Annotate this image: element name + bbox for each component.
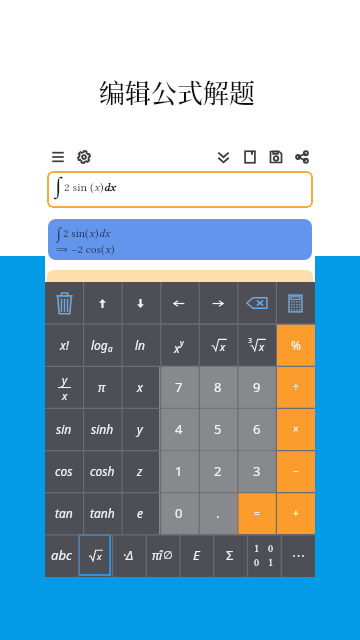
button[interactable]: Backspace [237, 282, 276, 324]
staticText: ln [135, 337, 146, 353]
button[interactable]: Menu [45, 144, 71, 170]
button[interactable]: x [237, 324, 276, 366]
button[interactable]: 3 [237, 450, 276, 492]
button[interactable]: ln [121, 324, 159, 366]
button[interactable]: x [78, 534, 111, 576]
staticText: y [62, 372, 68, 387]
button[interactable]: x [159, 324, 198, 366]
staticText: z [137, 463, 143, 479]
staticText: a [108, 343, 113, 354]
button[interactable]: E [179, 534, 213, 576]
staticText: ∅ [163, 549, 173, 562]
staticText: 1 [175, 462, 183, 480]
button[interactable]: Move right [198, 282, 237, 324]
button[interactable]: log [83, 324, 121, 366]
button[interactable]: x! [45, 324, 83, 366]
staticText: x [94, 180, 100, 194]
button[interactable]: x [198, 324, 237, 366]
button[interactable]: Move down [121, 282, 159, 324]
staticText: e [137, 505, 143, 521]
button[interactable]: 7 [159, 366, 198, 408]
button[interactable]: tanh [83, 492, 121, 534]
button[interactable]: ·Δ [111, 534, 145, 576]
button[interactable]: ÷ [276, 366, 315, 408]
staticText: 1 [268, 556, 274, 569]
staticText: tanh [90, 505, 115, 521]
button[interactable]: 0 [159, 492, 198, 534]
button[interactable]: x [121, 366, 159, 408]
staticText: E [193, 546, 200, 564]
staticText: π [98, 379, 106, 395]
button[interactable]: y [121, 408, 159, 450]
staticText: ⋯ [292, 548, 305, 563]
staticText: . [216, 504, 220, 522]
button[interactable]: z [121, 450, 159, 492]
staticText: x [259, 340, 265, 354]
staticText: dx [99, 227, 111, 240]
button[interactable]: e [121, 492, 159, 534]
button[interactable]: cos [45, 450, 83, 492]
button[interactable]: 1 [247, 534, 281, 576]
staticText: 3 [248, 336, 253, 346]
button[interactable]: πî [145, 534, 179, 576]
button[interactable]: ∫ [47, 171, 313, 208]
button[interactable]: Share [289, 144, 315, 170]
button[interactable]: tan [45, 492, 83, 534]
staticText: ∫ [54, 172, 64, 201]
button[interactable]: Σ [213, 534, 247, 576]
staticText: Σ [226, 546, 234, 564]
button[interactable]: % [276, 324, 315, 366]
button[interactable]: Collapse [210, 144, 236, 170]
button[interactable]: ∫ [48, 219, 312, 260]
button[interactable]: Move left [159, 282, 198, 324]
button[interactable]: 8 [198, 366, 237, 408]
button[interactable]: New document [237, 144, 263, 170]
staticText: x [174, 340, 180, 356]
button[interactable]: 1 [159, 450, 198, 492]
staticText: ⇒ −2 cos( [56, 243, 105, 256]
button[interactable]: × [276, 408, 315, 450]
staticText: = [254, 506, 260, 520]
button[interactable]: Delete [45, 282, 83, 324]
staticText: 0 [175, 504, 183, 522]
button[interactable]: 2 [198, 450, 237, 492]
staticText: ÷ [293, 380, 299, 394]
staticText: abc [51, 546, 72, 564]
staticText: 3 [253, 462, 261, 480]
staticText: 2 [214, 462, 222, 480]
button[interactable]: 4 [159, 408, 198, 450]
button[interactable]: ⋯ [281, 534, 315, 576]
staticText: ∫ [56, 224, 63, 243]
button[interactable]: abc [45, 534, 78, 576]
button[interactable]: Save [263, 144, 289, 170]
staticText: 0 [254, 556, 260, 569]
staticText: × [293, 422, 299, 436]
button[interactable]: − [276, 450, 315, 492]
staticText: x [97, 550, 102, 563]
staticText: 9 [253, 378, 261, 396]
staticText: − [293, 464, 299, 478]
button[interactable]: 5 [198, 408, 237, 450]
staticText: 编辑公式解题 [99, 73, 256, 110]
staticText: log [91, 337, 108, 353]
button[interactable]: Settings [71, 144, 97, 170]
button[interactable]: sin [45, 408, 83, 450]
staticText: 2 sin ( [64, 180, 94, 194]
staticText: 2 sin( [63, 227, 89, 240]
button[interactable]: 9 [237, 366, 276, 408]
staticText: ) [95, 227, 99, 240]
button[interactable]: sinh [83, 408, 121, 450]
button[interactable]: Move up [83, 282, 121, 324]
button[interactable]: + [276, 492, 315, 534]
staticText: sinh [91, 421, 114, 437]
button[interactable]: y [45, 366, 83, 408]
staticText: x [105, 243, 111, 256]
button[interactable]: 6 [237, 408, 276, 450]
button[interactable]: . [198, 492, 237, 534]
button[interactable]: cosh [83, 450, 121, 492]
button[interactable]: = [237, 492, 276, 534]
button[interactable]: π [83, 366, 121, 408]
staticText: tan [55, 505, 73, 521]
staticText: 1 [254, 542, 260, 555]
button[interactable]: Calculator [276, 282, 315, 324]
